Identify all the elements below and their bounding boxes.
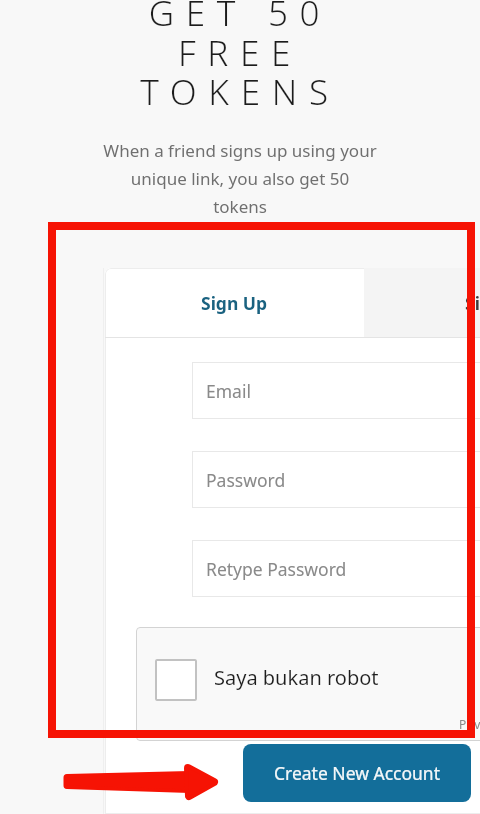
staticText: Privacy <box>459 716 480 732</box>
staticText: GET 50 FREE TOKENS <box>140 0 340 115</box>
button[interactable]: Retype Password <box>192 540 480 597</box>
button[interactable]: Create New Account <box>243 744 471 802</box>
button[interactable]: Email <box>192 362 480 419</box>
button[interactable]: I am not a robot checkbox <box>155 659 197 701</box>
staticText: Create New Account <box>274 761 441 785</box>
staticText: Password <box>206 468 286 492</box>
staticText: Retype Password <box>206 557 347 581</box>
staticText: Sign Up <box>201 291 268 315</box>
staticText: When a friend signs up using your unique… <box>103 139 377 218</box>
button[interactable]: Sign In <box>364 268 480 337</box>
staticText: Sign In <box>465 291 480 315</box>
staticText: Email <box>206 379 251 403</box>
button[interactable]: Password <box>192 451 480 508</box>
staticText: Saya bukan robot <box>214 664 379 691</box>
button[interactable]: Sign Up <box>105 268 364 337</box>
